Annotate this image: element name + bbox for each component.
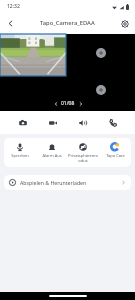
button[interactable]: Call [101, 111, 124, 134]
button[interactable]: Screenshot [11, 111, 34, 134]
button[interactable]: Record video [41, 111, 64, 134]
button[interactable]: Sprechen [5, 138, 35, 158]
button[interactable]: Zoom in [96, 85, 106, 95]
staticText: Tapo Care [106, 153, 125, 158]
button[interactable]: Abspielen & Herunterladen [4, 175, 131, 190]
staticText: Tapo_Camera_EDAA [40, 19, 95, 27]
button[interactable]: Zoom in [96, 48, 106, 58]
staticText: Sprechen [11, 153, 29, 158]
button[interactable]: Previous day [53, 101, 58, 106]
button[interactable]: Alarm Aus [37, 138, 67, 158]
staticText: Privatsphärenmodus [68, 153, 98, 163]
staticText: Alarm Aus [42, 153, 62, 158]
staticText: 12:32 [7, 3, 20, 10]
button[interactable]: Tapo Care [100, 138, 130, 158]
button[interactable]: Settings [114, 13, 135, 34]
button[interactable]: Privatsphärenmodus [68, 138, 98, 163]
button[interactable]: Back [0, 13, 21, 34]
staticText: 01/08 [61, 100, 75, 107]
staticText: Abspielen & Herunterladen [20, 179, 87, 186]
button[interactable]: Sound [71, 111, 94, 134]
button[interactable]: Next day [78, 101, 83, 106]
